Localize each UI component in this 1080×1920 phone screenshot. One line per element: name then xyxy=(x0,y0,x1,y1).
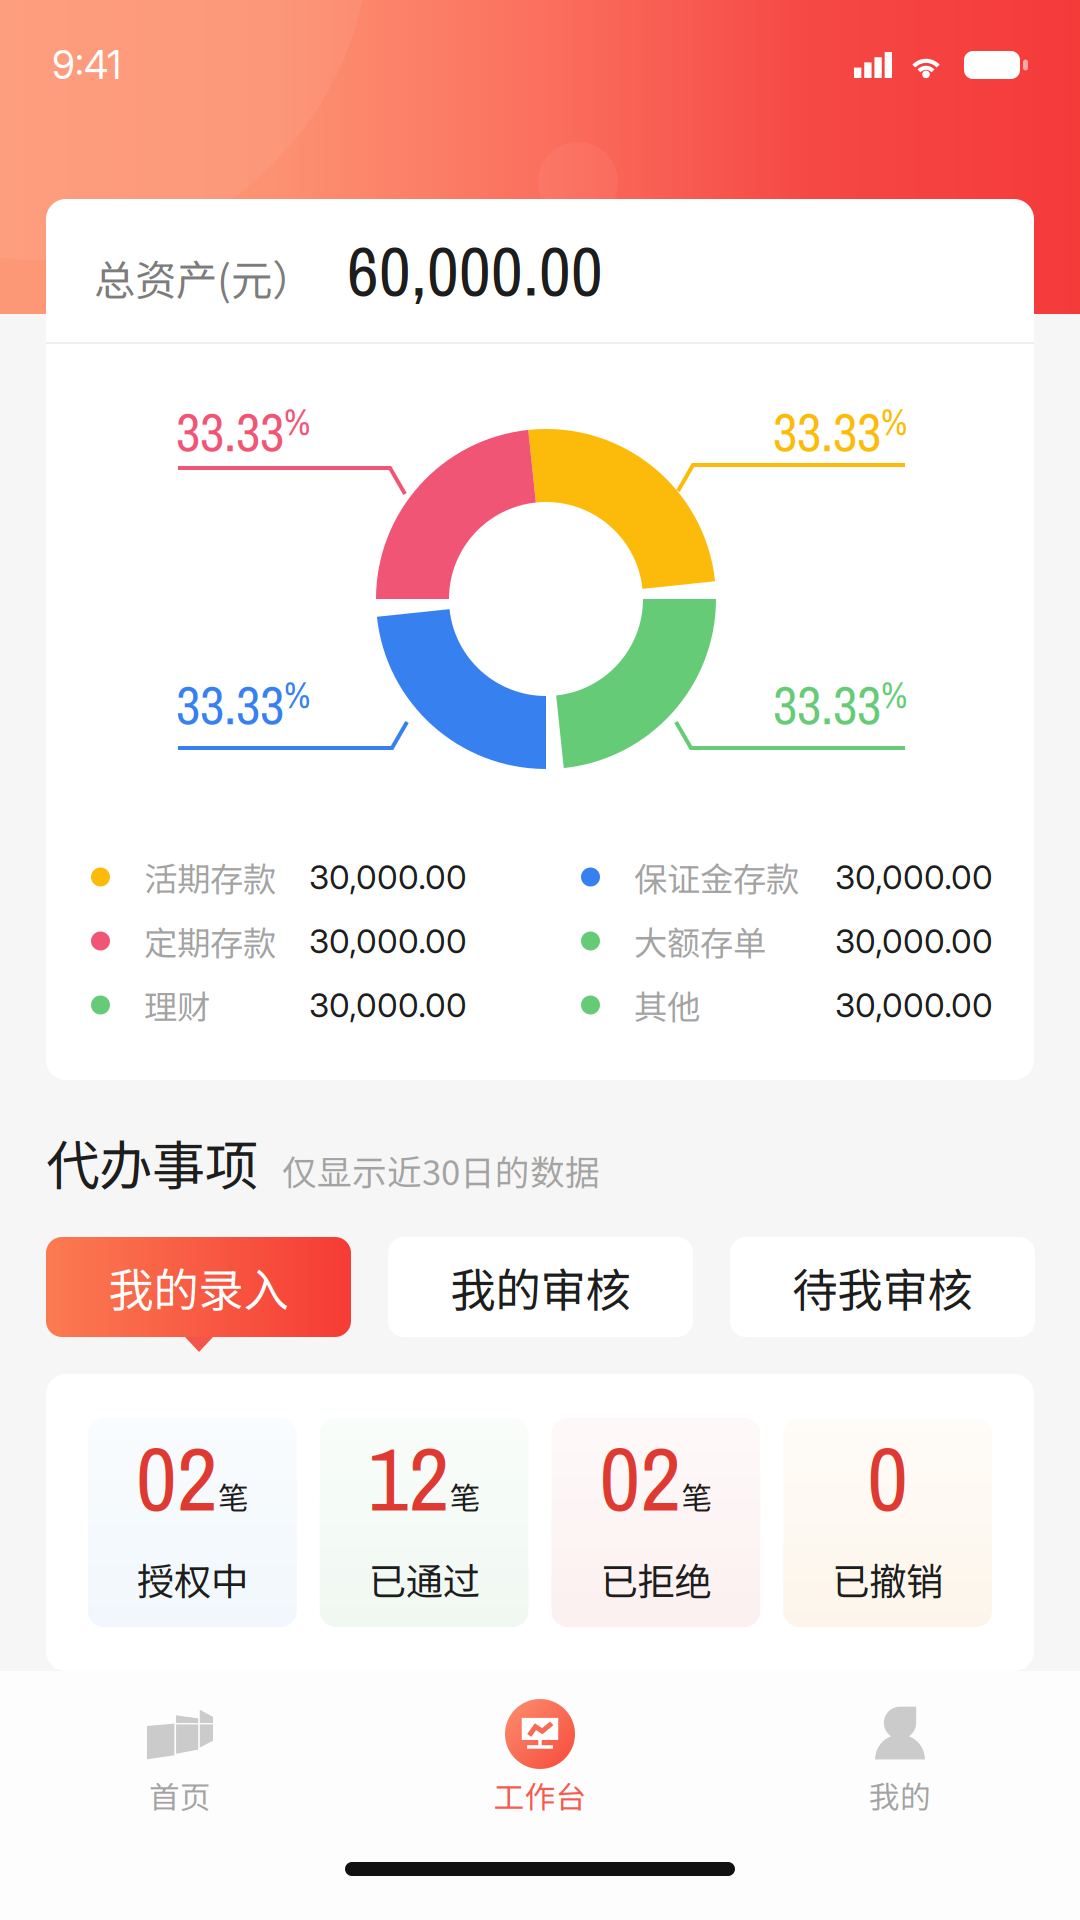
staticText: 30,000.00 xyxy=(835,921,993,961)
button[interactable]: 02 xyxy=(88,1418,297,1627)
button[interactable]: 0 xyxy=(783,1418,992,1627)
staticText: 我的审核 xyxy=(450,1254,630,1320)
staticText: 30,000.00 xyxy=(835,985,993,1025)
staticText: 其他 xyxy=(634,981,700,1029)
button[interactable]: 工作台 xyxy=(360,1699,720,1817)
staticText: 待我审核 xyxy=(792,1254,972,1320)
staticText: 33.33 xyxy=(773,669,881,741)
staticText: 授权中 xyxy=(137,1552,248,1606)
staticText: 我的 xyxy=(869,1773,931,1817)
button[interactable]: 我的录入 xyxy=(46,1237,351,1337)
staticText: 总资产(元） xyxy=(94,248,313,307)
staticText: 笔 xyxy=(681,1474,712,1518)
button[interactable]: 我的审核 xyxy=(388,1237,693,1337)
staticText: % xyxy=(881,398,907,446)
staticText: 工作台 xyxy=(493,1773,586,1817)
staticText: 30,000.00 xyxy=(835,857,993,897)
staticText: 02 xyxy=(136,1418,218,1538)
staticText: 理财 xyxy=(144,981,210,1029)
staticText: % xyxy=(284,398,310,446)
staticText: 30,000.00 xyxy=(309,921,467,961)
staticText: 30,000.00 xyxy=(309,985,467,1025)
staticText: 笔 xyxy=(450,1474,481,1518)
button[interactable]: 12 xyxy=(320,1418,529,1627)
staticText: 定期存款 xyxy=(144,917,276,965)
staticText: 首页 xyxy=(149,1773,211,1817)
staticText: 12 xyxy=(368,1418,450,1538)
staticText: 已通过 xyxy=(369,1552,480,1606)
staticText: % xyxy=(284,671,310,719)
staticText: 02 xyxy=(599,1418,681,1538)
staticText: 33.33 xyxy=(176,669,284,741)
staticText: 保证金存款 xyxy=(634,853,799,901)
staticText: 代办事项 xyxy=(46,1123,258,1201)
staticText: 已拒绝 xyxy=(600,1552,711,1606)
staticText: % xyxy=(881,671,907,719)
staticText: 仅显示近30日的数据 xyxy=(282,1145,600,1195)
button[interactable]: 02 xyxy=(551,1418,760,1627)
staticText: 已撤销 xyxy=(832,1552,943,1606)
staticText: 60,000.00 xyxy=(347,224,603,317)
staticText: 笔 xyxy=(218,1474,249,1518)
staticText: 活期存款 xyxy=(144,853,276,901)
staticText: 30,000.00 xyxy=(309,857,467,897)
staticText: 9:41 xyxy=(52,42,121,88)
button[interactable]: 待我审核 xyxy=(730,1237,1035,1337)
staticText: 0 xyxy=(867,1418,908,1538)
staticText: 33.33 xyxy=(176,396,284,468)
staticText: 33.33 xyxy=(773,396,881,468)
button[interactable]: 我的 xyxy=(720,1699,1080,1817)
staticText: 我的录入 xyxy=(108,1254,288,1320)
staticText: 大额存单 xyxy=(634,917,766,965)
button[interactable]: 首页 xyxy=(0,1699,360,1817)
